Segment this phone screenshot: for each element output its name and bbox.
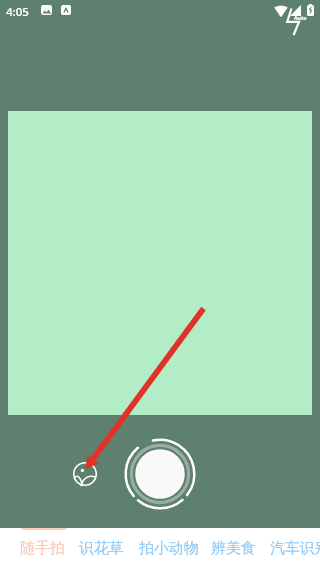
staticText: 4:05: [6, 4, 29, 20]
staticText: 随手拍: [20, 539, 65, 558]
staticText: Auto: [294, 14, 307, 21]
staticText: 汽车识别: [270, 539, 320, 558]
staticText: 拍小动物: [139, 539, 199, 558]
button[interactable]: 辨美食: [203, 529, 264, 568]
button[interactable]: Take photo: [124, 438, 196, 510]
staticText: 辨美食: [211, 539, 256, 558]
button[interactable]: 拍小动物: [131, 529, 207, 568]
button[interactable]: 汽车识别: [262, 529, 320, 568]
button[interactable]: Gallery: [73, 462, 97, 486]
staticText: 识花草: [79, 539, 124, 558]
button[interactable]: 随手拍: [12, 529, 73, 568]
button[interactable]: 识花草: [71, 529, 132, 568]
